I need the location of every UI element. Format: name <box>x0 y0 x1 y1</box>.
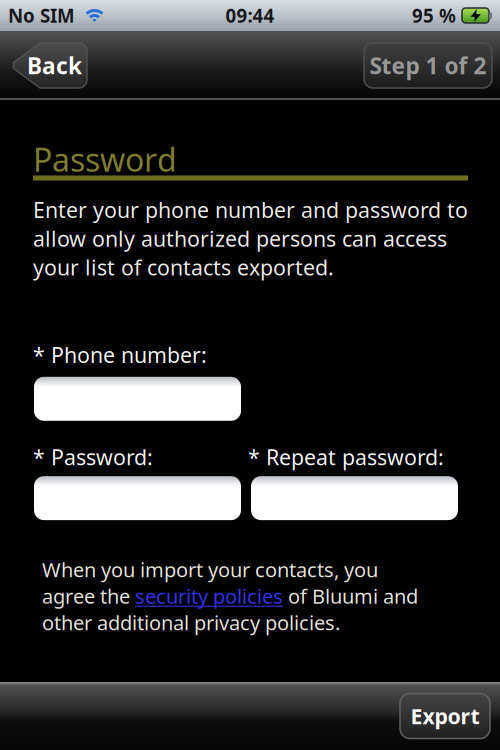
button[interactable]: Export <box>400 693 490 738</box>
staticText: Password <box>33 138 177 180</box>
button[interactable]: Text field <box>34 377 241 421</box>
button[interactable]: Back <box>12 43 87 88</box>
staticText: 95 % <box>412 3 456 28</box>
staticText: Export <box>410 702 479 730</box>
staticText: No SIM <box>8 3 75 28</box>
button[interactable]: Text field <box>251 476 458 520</box>
staticText: When you import your contacts, you agree… <box>42 556 418 636</box>
staticText: Back <box>27 50 82 80</box>
staticText: Enter your phone number and password to … <box>33 195 468 281</box>
staticText: Step 1 of 2 <box>369 50 486 80</box>
staticText: 09:44 <box>225 3 274 28</box>
staticText: * Repeat password: <box>248 443 444 471</box>
button[interactable]: Step 1 of 2 <box>364 43 492 88</box>
staticText: * Password: <box>33 443 153 471</box>
button[interactable]: Text field <box>34 476 241 520</box>
staticText: * Phone number: <box>33 340 207 369</box>
